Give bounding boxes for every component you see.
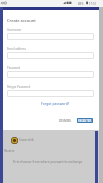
staticText: Create account	[7, 18, 36, 23]
button[interactable]: Forgot password?	[41, 101, 70, 106]
staticText: Scam shib	[19, 138, 34, 142]
button[interactable]	[7, 71, 94, 78]
button[interactable]	[7, 90, 94, 97]
staticText: Email address	[7, 47, 26, 51]
staticText: Password	[7, 66, 21, 70]
staticText: 88%	[78, 2, 84, 6]
button[interactable]: REGISTER	[77, 118, 93, 123]
staticText: 17:51	[89, 2, 97, 6]
staticText: Username	[7, 28, 22, 32]
button[interactable]: DISMISS	[59, 119, 72, 123]
staticText: Retype Password	[7, 85, 31, 89]
staticText: REGISTER	[78, 119, 92, 123]
button[interactable]	[7, 33, 94, 40]
staticText: First chooser from where you want to exc…	[13, 160, 83, 164]
button[interactable]	[7, 52, 94, 59]
staticText: Receive	[4, 149, 15, 153]
